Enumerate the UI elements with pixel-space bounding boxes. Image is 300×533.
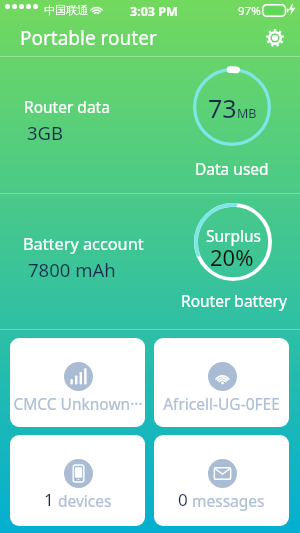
staticText: Surplus bbox=[206, 225, 262, 246]
staticText: Africell-UG-0FEE bbox=[163, 393, 280, 414]
staticText: Router battery bbox=[181, 290, 287, 311]
staticText: CMCC Unknown··· bbox=[13, 393, 143, 414]
button[interactable]: 1 bbox=[10, 435, 145, 526]
staticText: 3:03 PM bbox=[130, 3, 178, 20]
staticText: Data used bbox=[195, 158, 269, 179]
staticText: 3GB bbox=[27, 120, 64, 145]
staticText: messages bbox=[192, 490, 265, 511]
staticText: MB bbox=[237, 105, 257, 122]
staticText: Battery account bbox=[23, 233, 144, 255]
staticText: Router data bbox=[24, 96, 110, 117]
staticText: 73 bbox=[208, 91, 237, 125]
staticText: 7800 mAh bbox=[28, 257, 116, 282]
staticText: Portable router bbox=[20, 25, 157, 51]
button[interactable]: 0 bbox=[154, 435, 289, 526]
staticText: 1 bbox=[44, 488, 54, 511]
staticText: 0 bbox=[178, 488, 188, 511]
staticText: 中国联通 bbox=[44, 3, 88, 17]
button[interactable]: Settings bbox=[261, 24, 289, 52]
staticText: devices bbox=[58, 490, 112, 511]
staticText: 20% bbox=[210, 242, 254, 272]
staticText: 97% bbox=[238, 3, 261, 19]
button[interactable]: Africell-UG-0FEE bbox=[154, 338, 289, 427]
button[interactable]: CMCC Unknown··· bbox=[10, 338, 145, 427]
